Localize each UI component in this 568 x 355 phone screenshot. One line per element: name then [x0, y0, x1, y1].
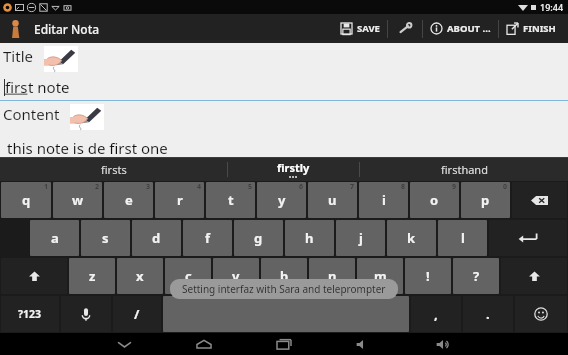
button[interactable]: Backspace — [512, 182, 567, 218]
staticText: s — [102, 229, 109, 247]
staticText: f — [205, 229, 211, 247]
staticText: 4 — [197, 182, 202, 192]
staticText: r — [177, 191, 183, 209]
staticText: k — [407, 229, 416, 247]
staticText: firsts — [101, 162, 127, 177]
button[interactable]: FINISH — [499, 14, 563, 43]
button[interactable]: ?123 — [1, 296, 59, 332]
button[interactable]: Shift — [501, 258, 567, 294]
button[interactable]: v — [213, 258, 259, 294]
staticText: Setting interfaz with Sara and telepromp… — [182, 282, 386, 296]
staticText: v — [232, 267, 240, 285]
button[interactable]: Enter — [489, 220, 567, 256]
staticText: . — [486, 305, 490, 323]
button[interactable]: l — [438, 220, 487, 256]
button[interactable]: e — [104, 182, 153, 218]
staticText: 6 — [299, 182, 304, 192]
staticText: 1 — [44, 182, 49, 192]
button[interactable]: m — [357, 258, 403, 294]
button[interactable]: firstly — [228, 157, 359, 181]
staticText: m — [374, 267, 387, 285]
staticText: 19:44 — [540, 1, 564, 13]
staticText: firs — [5, 77, 28, 97]
button[interactable]: r — [155, 182, 204, 218]
staticText: e — [125, 191, 133, 209]
staticText: l — [461, 229, 465, 247]
button[interactable]: Hide keyboard — [104, 333, 144, 355]
button[interactable]: Shift — [1, 258, 67, 294]
button[interactable]: firsthand — [360, 157, 568, 181]
staticText: z — [89, 267, 96, 285]
staticText: o — [430, 191, 439, 209]
staticText: j — [359, 229, 363, 247]
button[interactable]: Volume down — [344, 333, 384, 355]
staticText: 0 — [503, 182, 508, 192]
button[interactable]: b — [261, 258, 307, 294]
button[interactable]: k — [387, 220, 436, 256]
staticText: 5 — [248, 182, 253, 192]
staticText: x — [136, 267, 144, 285]
button[interactable]: Space — [163, 296, 409, 332]
button[interactable]: a — [30, 220, 79, 256]
button[interactable]: , — [411, 296, 461, 332]
staticText: t note — [28, 77, 70, 97]
staticText: c — [185, 267, 192, 285]
button[interactable]: j — [336, 220, 385, 256]
button[interactable]: Volume up — [424, 333, 464, 355]
staticText: w — [72, 191, 84, 209]
staticText: Editar Nota — [34, 21, 100, 37]
staticText: / — [134, 305, 140, 323]
button[interactable]: d — [132, 220, 181, 256]
staticText: q — [22, 191, 31, 209]
staticText: SAVE — [357, 22, 380, 35]
button[interactable]: n — [309, 258, 355, 294]
staticText: b — [280, 267, 289, 285]
button[interactable]: z — [69, 258, 115, 294]
button[interactable]: h — [285, 220, 334, 256]
button[interactable]: g — [234, 220, 283, 256]
button[interactable]: ABOUT ... — [423, 14, 498, 43]
button[interactable]: p — [461, 182, 510, 218]
button[interactable]: . — [463, 296, 513, 332]
button[interactable]: ? — [453, 258, 499, 294]
staticText: i — [382, 191, 386, 209]
staticText: 9 — [452, 182, 457, 192]
button[interactable]: w — [53, 182, 102, 218]
staticText: ? — [473, 267, 480, 285]
button[interactable]: f — [183, 220, 232, 256]
staticText: n — [328, 267, 337, 285]
button[interactable]: Recent apps — [264, 333, 304, 355]
staticText: y — [278, 191, 286, 209]
button[interactable]: i — [359, 182, 408, 218]
button[interactable]: Voice input — [61, 296, 111, 332]
staticText: FINISH — [523, 22, 556, 35]
button[interactable]: Emoji — [515, 296, 567, 332]
button[interactable]: s — [81, 220, 130, 256]
staticText: ABOUT ... — [447, 22, 491, 35]
button[interactable]: / — [113, 296, 161, 332]
staticText: g — [254, 229, 263, 247]
staticText: d — [152, 229, 161, 247]
staticText: 2 — [95, 182, 100, 192]
staticText: u — [328, 191, 337, 209]
staticText: , — [434, 305, 438, 323]
button[interactable]: firsts — [0, 157, 227, 181]
staticText: 8 — [401, 182, 406, 192]
staticText: this note is de first one — [7, 138, 168, 157]
button[interactable]: x — [117, 258, 163, 294]
staticText: a — [51, 229, 59, 247]
button[interactable]: ! — [405, 258, 451, 294]
button[interactable]: Settings — [388, 14, 422, 43]
button[interactable]: u — [308, 182, 357, 218]
staticText: firstly — [277, 160, 310, 175]
button[interactable]: t — [206, 182, 255, 218]
staticText: 3 — [146, 182, 151, 192]
button[interactable]: Home — [184, 333, 224, 355]
staticText: Content — [3, 104, 60, 124]
button[interactable]: q — [1, 182, 51, 218]
button[interactable]: c — [165, 258, 211, 294]
button[interactable]: SAVE — [333, 14, 387, 43]
staticText: ! — [426, 267, 430, 285]
button[interactable]: y — [257, 182, 306, 218]
button[interactable]: o — [410, 182, 459, 218]
